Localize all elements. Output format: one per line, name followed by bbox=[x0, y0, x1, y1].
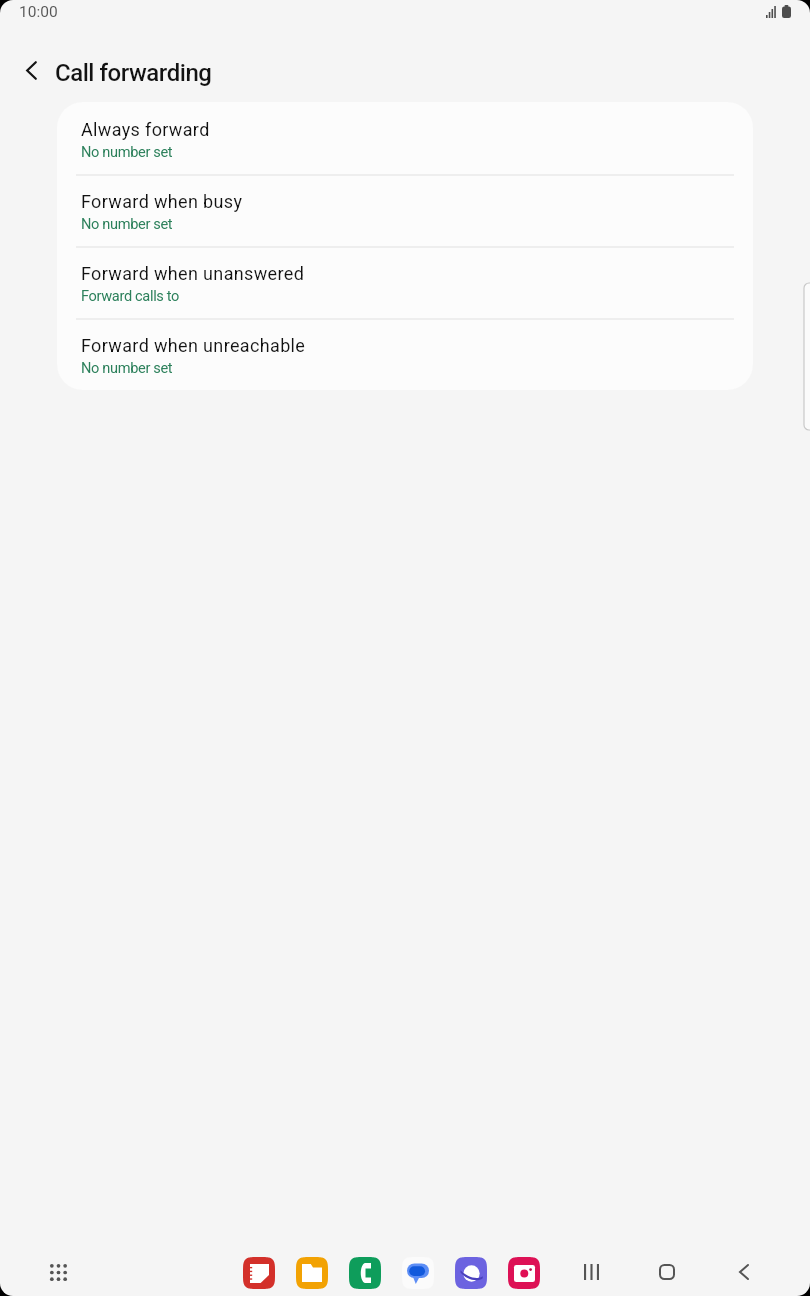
button[interactable]: Internet bbox=[455, 1257, 487, 1289]
button[interactable]: Forward when busy bbox=[57, 174, 753, 246]
button[interactable]: My Files bbox=[296, 1257, 328, 1289]
button[interactable]: Navigate up bbox=[8, 47, 54, 93]
button[interactable]: Phone bbox=[349, 1257, 381, 1289]
button[interactable]: Always forward bbox=[57, 102, 753, 174]
staticText: No number set bbox=[81, 359, 173, 376]
staticText: Forward when unanswered bbox=[81, 263, 305, 284]
staticText: Forward when busy bbox=[81, 191, 243, 212]
button[interactable]: Back bbox=[721, 1249, 767, 1295]
button[interactable]: Camera bbox=[508, 1257, 540, 1289]
staticText: Forward calls to bbox=[81, 287, 180, 304]
button[interactable]: Samsung Notes bbox=[243, 1257, 275, 1289]
staticText: No number set bbox=[81, 143, 173, 160]
button[interactable]: Recent apps bbox=[568, 1249, 614, 1295]
button[interactable]: Home bbox=[644, 1249, 690, 1295]
button[interactable]: Forward when unreachable bbox=[57, 318, 753, 390]
staticText: 10:00 bbox=[19, 3, 58, 21]
staticText: No number set bbox=[81, 215, 173, 232]
button[interactable]: Forward when unanswered bbox=[57, 246, 753, 318]
button[interactable]: Messages bbox=[402, 1257, 434, 1289]
button[interactable]: Apps bbox=[36, 1250, 81, 1295]
staticText: Always forward bbox=[81, 119, 210, 140]
staticText: Call forwarding bbox=[55, 59, 212, 87]
staticText: Forward when unreachable bbox=[81, 335, 306, 356]
